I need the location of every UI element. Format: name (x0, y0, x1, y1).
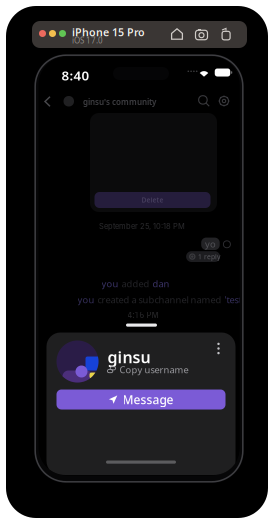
button[interactable]: Back (39, 93, 55, 109)
staticText: iOS 17.0 (72, 35, 103, 46)
button[interactable]: Settings (218, 95, 229, 106)
button[interactable]: Search (198, 95, 209, 106)
staticText: 1 reply (198, 252, 220, 261)
staticText: iPhone 15 Pro (72, 25, 145, 39)
button[interactable]: Rotate (220, 28, 231, 40)
staticText: Copy username (119, 363, 188, 376)
button[interactable]: Screenshot (195, 28, 208, 40)
staticText: added (121, 277, 149, 290)
staticText: 4:16 PM (127, 309, 158, 320)
staticText: Message (122, 391, 173, 407)
button[interactable]: Home (171, 28, 183, 40)
staticText: 'test' (224, 293, 244, 306)
button[interactable]: Message (56, 389, 225, 409)
staticText: ginsu (107, 346, 150, 368)
button[interactable]: More options (211, 340, 225, 356)
staticText: 8:40 (61, 66, 89, 84)
staticText: ginsu's community (83, 96, 156, 107)
staticText: created a subchannel named (97, 293, 221, 306)
staticText: Delete (141, 196, 163, 204)
staticText: yo (205, 238, 216, 250)
staticText: dan (152, 277, 169, 290)
staticText: September 25, 10:18 PM (99, 222, 185, 231)
staticText: you (77, 293, 94, 306)
staticText: you (101, 277, 118, 290)
button[interactable]: Copy username (107, 363, 188, 376)
